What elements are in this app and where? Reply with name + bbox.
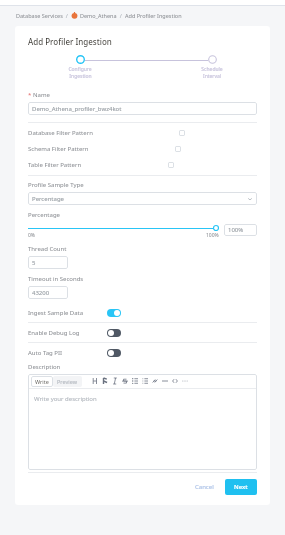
staticText: Percentage	[28, 211, 60, 219]
staticText: 100%	[206, 232, 219, 239]
button[interactable]: Configure	[66, 55, 94, 80]
button[interactable]: Preview	[53, 376, 82, 387]
button[interactable]: Format 0	[90, 376, 100, 386]
button[interactable]: Write your description	[28, 389, 257, 470]
button[interactable]	[28, 224, 219, 232]
staticText: Auto Tag PII	[28, 349, 63, 357]
staticText: Profile Sample Type	[28, 181, 84, 189]
button[interactable]: Format 5	[140, 376, 150, 386]
button[interactable]: Table Filter Pattern	[28, 157, 257, 173]
staticText: Next	[234, 483, 248, 491]
staticText: Percentage	[32, 195, 64, 203]
staticText: Description	[28, 363, 61, 371]
staticText: 0%	[28, 232, 36, 239]
button[interactable]: Auto Tag PII	[107, 349, 121, 357]
staticText: Schedule Interval	[193, 66, 231, 80]
button[interactable]: Format 7	[160, 376, 170, 386]
button[interactable]: 5	[28, 256, 68, 269]
staticText: Cancel	[195, 483, 214, 491]
button[interactable]: Demo_Athena	[80, 12, 117, 19]
button[interactable]: 100%	[224, 224, 257, 236]
staticText: Name	[33, 91, 50, 99]
button[interactable]: Format 6	[150, 376, 160, 386]
staticText: /	[117, 12, 125, 19]
button[interactable]: Format 1	[100, 376, 110, 386]
button[interactable]: Enable Debug Log	[107, 329, 121, 337]
button[interactable]: Format 9	[180, 376, 190, 386]
staticText: *	[28, 91, 33, 99]
staticText: Schema Filter Pattern	[28, 145, 89, 153]
button[interactable]: Auto Tag PII	[28, 343, 257, 362]
staticText: Timeout in Seconds	[28, 275, 84, 283]
staticText: /	[63, 12, 71, 19]
staticText: Demo_Athena_profiler_bwz4kot	[32, 105, 122, 113]
button[interactable]: Demo_Athena_profiler_bwz4kot	[28, 102, 257, 115]
button[interactable]: Database Services	[16, 12, 63, 19]
button[interactable]: Next	[225, 479, 257, 495]
button[interactable]: Schedule Interval	[193, 55, 231, 80]
staticText: 100%	[228, 226, 244, 234]
button[interactable]: Format 2	[110, 376, 120, 386]
button[interactable]: Cancel	[190, 480, 219, 494]
staticText: 5	[32, 259, 36, 267]
button[interactable]: Schema Filter Pattern	[28, 141, 257, 157]
button[interactable]: 43200	[28, 286, 68, 299]
button[interactable]: Format 3	[120, 376, 130, 386]
staticText: Write your description	[34, 395, 97, 403]
staticText: Ingest Sample Data	[28, 309, 84, 317]
button[interactable]: Ingest Sample Data	[107, 309, 121, 317]
button[interactable]: Format 4	[130, 376, 140, 386]
button[interactable]: Database Filter Pattern	[28, 125, 257, 141]
button[interactable]: Enable Debug Log	[28, 323, 257, 342]
staticText: 43200	[32, 289, 50, 297]
staticText: Thread Count	[28, 245, 67, 253]
staticText: Ingestion	[69, 73, 92, 80]
button[interactable]: Ingest Sample Data	[28, 303, 257, 322]
button[interactable]: Format 8	[170, 376, 180, 386]
staticText: Table Filter Pattern	[28, 161, 82, 169]
staticText: Database Filter Pattern	[28, 129, 93, 137]
staticText: Configure	[68, 66, 92, 73]
staticText: Add Profiler Ingestion	[28, 36, 112, 47]
button[interactable]: Percentage	[28, 192, 257, 205]
button[interactable]: Write	[31, 376, 53, 387]
staticText: Preview	[57, 378, 78, 385]
staticText: Write	[35, 378, 49, 385]
staticText: Enable Debug Log	[28, 329, 80, 337]
staticText: Add Profiler Ingestion	[125, 12, 182, 19]
